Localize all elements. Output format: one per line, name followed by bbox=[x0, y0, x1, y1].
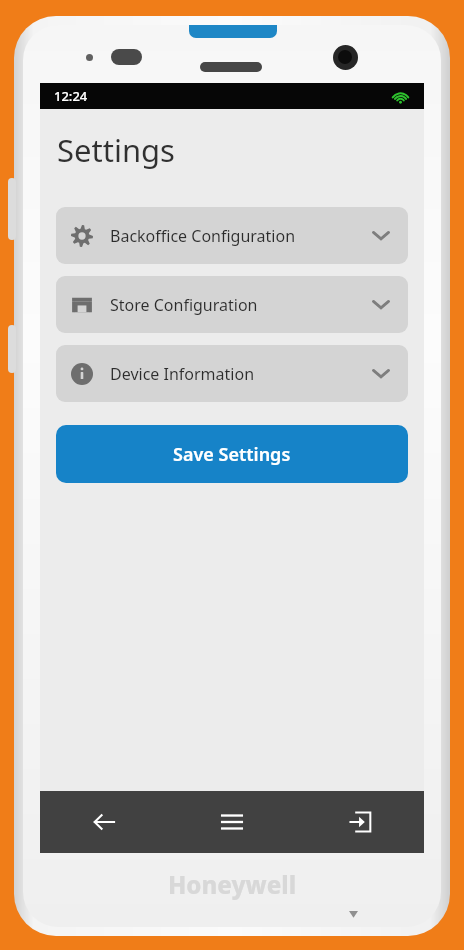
staticText: 12:24 bbox=[54, 87, 88, 105]
button[interactable]: Save Settings bbox=[56, 425, 408, 483]
button[interactable]: Store Configuration bbox=[56, 276, 408, 333]
staticText: Store Configuration bbox=[110, 294, 258, 316]
staticText: Save Settings bbox=[173, 442, 291, 467]
button[interactable]: Back bbox=[40, 791, 168, 853]
staticText: Backoffice Configuration bbox=[110, 225, 296, 247]
staticText: Honeywell bbox=[168, 868, 297, 901]
button[interactable]: Backoffice Configuration bbox=[56, 207, 408, 264]
staticText: Device Information bbox=[110, 363, 255, 385]
button[interactable]: Menu bbox=[168, 791, 296, 853]
button[interactable]: Device Information bbox=[56, 345, 408, 402]
button[interactable]: Exit bbox=[296, 791, 424, 853]
staticText: Settings bbox=[57, 129, 175, 171]
